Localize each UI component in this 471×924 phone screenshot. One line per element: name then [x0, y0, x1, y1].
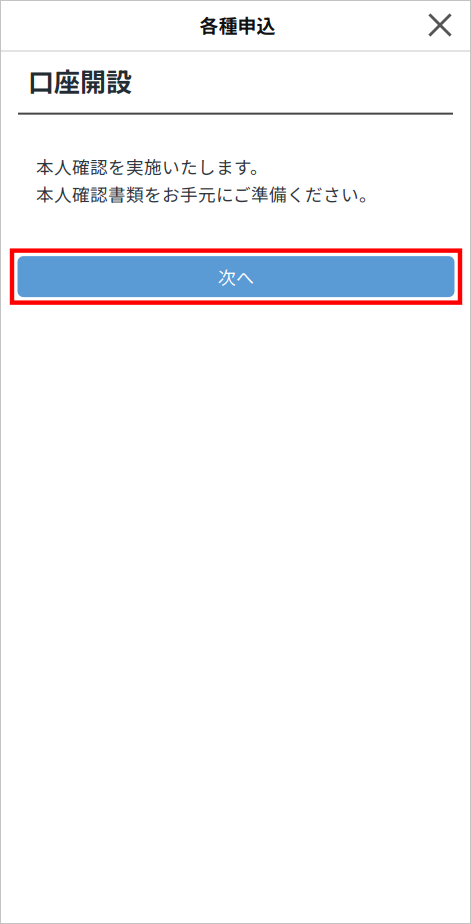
staticText: 各種申込	[199, 11, 275, 38]
staticText: 本人確認書類をお手元にご準備ください。	[36, 181, 377, 207]
button[interactable]: Close	[418, 1, 462, 49]
staticText: 次へ	[218, 264, 254, 290]
button[interactable]: 次へ	[12, 251, 460, 303]
staticText: 本人確認を実施いたします。	[36, 154, 268, 179]
staticText: 口座開設	[28, 61, 132, 99]
